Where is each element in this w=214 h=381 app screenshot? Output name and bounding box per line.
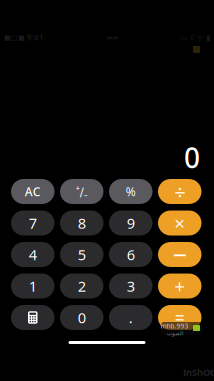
staticText: ×	[174, 211, 185, 235]
button[interactable]: 0	[60, 305, 103, 330]
button[interactable]: 3	[109, 273, 152, 298]
staticText: 2	[78, 276, 86, 296]
button[interactable]: 7	[11, 210, 54, 235]
button[interactable]: ÷	[158, 179, 201, 204]
staticText: 7	[29, 213, 37, 233]
staticText: +	[174, 274, 185, 298]
button[interactable]: −	[158, 242, 201, 267]
staticText: 8	[78, 213, 86, 233]
staticText: ⁺∕₋	[76, 183, 88, 199]
button[interactable]: Calculator mode	[11, 305, 54, 330]
button[interactable]: =	[158, 305, 201, 330]
button[interactable]: .	[109, 305, 152, 330]
staticText: −	[173, 238, 187, 271]
button[interactable]: 8	[60, 210, 103, 235]
staticText: AC	[25, 183, 41, 199]
button[interactable]: 5	[60, 242, 103, 267]
staticText: 4	[29, 245, 37, 264]
staticText: 0	[184, 139, 200, 176]
staticText: ▭ ıl ᯤ ▮	[180, 32, 210, 43]
staticText: 3	[127, 276, 135, 296]
staticText: mhb.993	[160, 321, 188, 330]
button[interactable]: ⁺∕₋	[60, 179, 103, 204]
button[interactable]: +	[158, 273, 201, 298]
staticText: %	[126, 183, 136, 199]
button[interactable]: %	[109, 179, 152, 204]
button[interactable]: 2	[60, 273, 103, 298]
staticText: 9	[127, 213, 135, 233]
button[interactable]: AC	[11, 179, 54, 204]
staticText: 6	[127, 245, 135, 264]
button[interactable]: 1	[11, 273, 54, 298]
button[interactable]: 6	[109, 242, 152, 267]
button[interactable]: 4	[11, 242, 54, 267]
staticText: .	[129, 308, 133, 327]
staticText: الصوت	[166, 330, 182, 336]
staticText: 0	[78, 308, 86, 327]
staticText: =	[175, 306, 185, 329]
button[interactable]: 9	[109, 210, 152, 235]
staticText: 1	[29, 276, 37, 296]
button[interactable]: ×	[158, 210, 201, 235]
staticText: InShOt	[183, 366, 214, 378]
staticText: ▬▬	[106, 34, 118, 41]
staticText: 5	[78, 245, 86, 264]
staticText: ÷	[174, 178, 185, 205]
staticText: ◼◻◼ 9:41	[4, 32, 44, 43]
